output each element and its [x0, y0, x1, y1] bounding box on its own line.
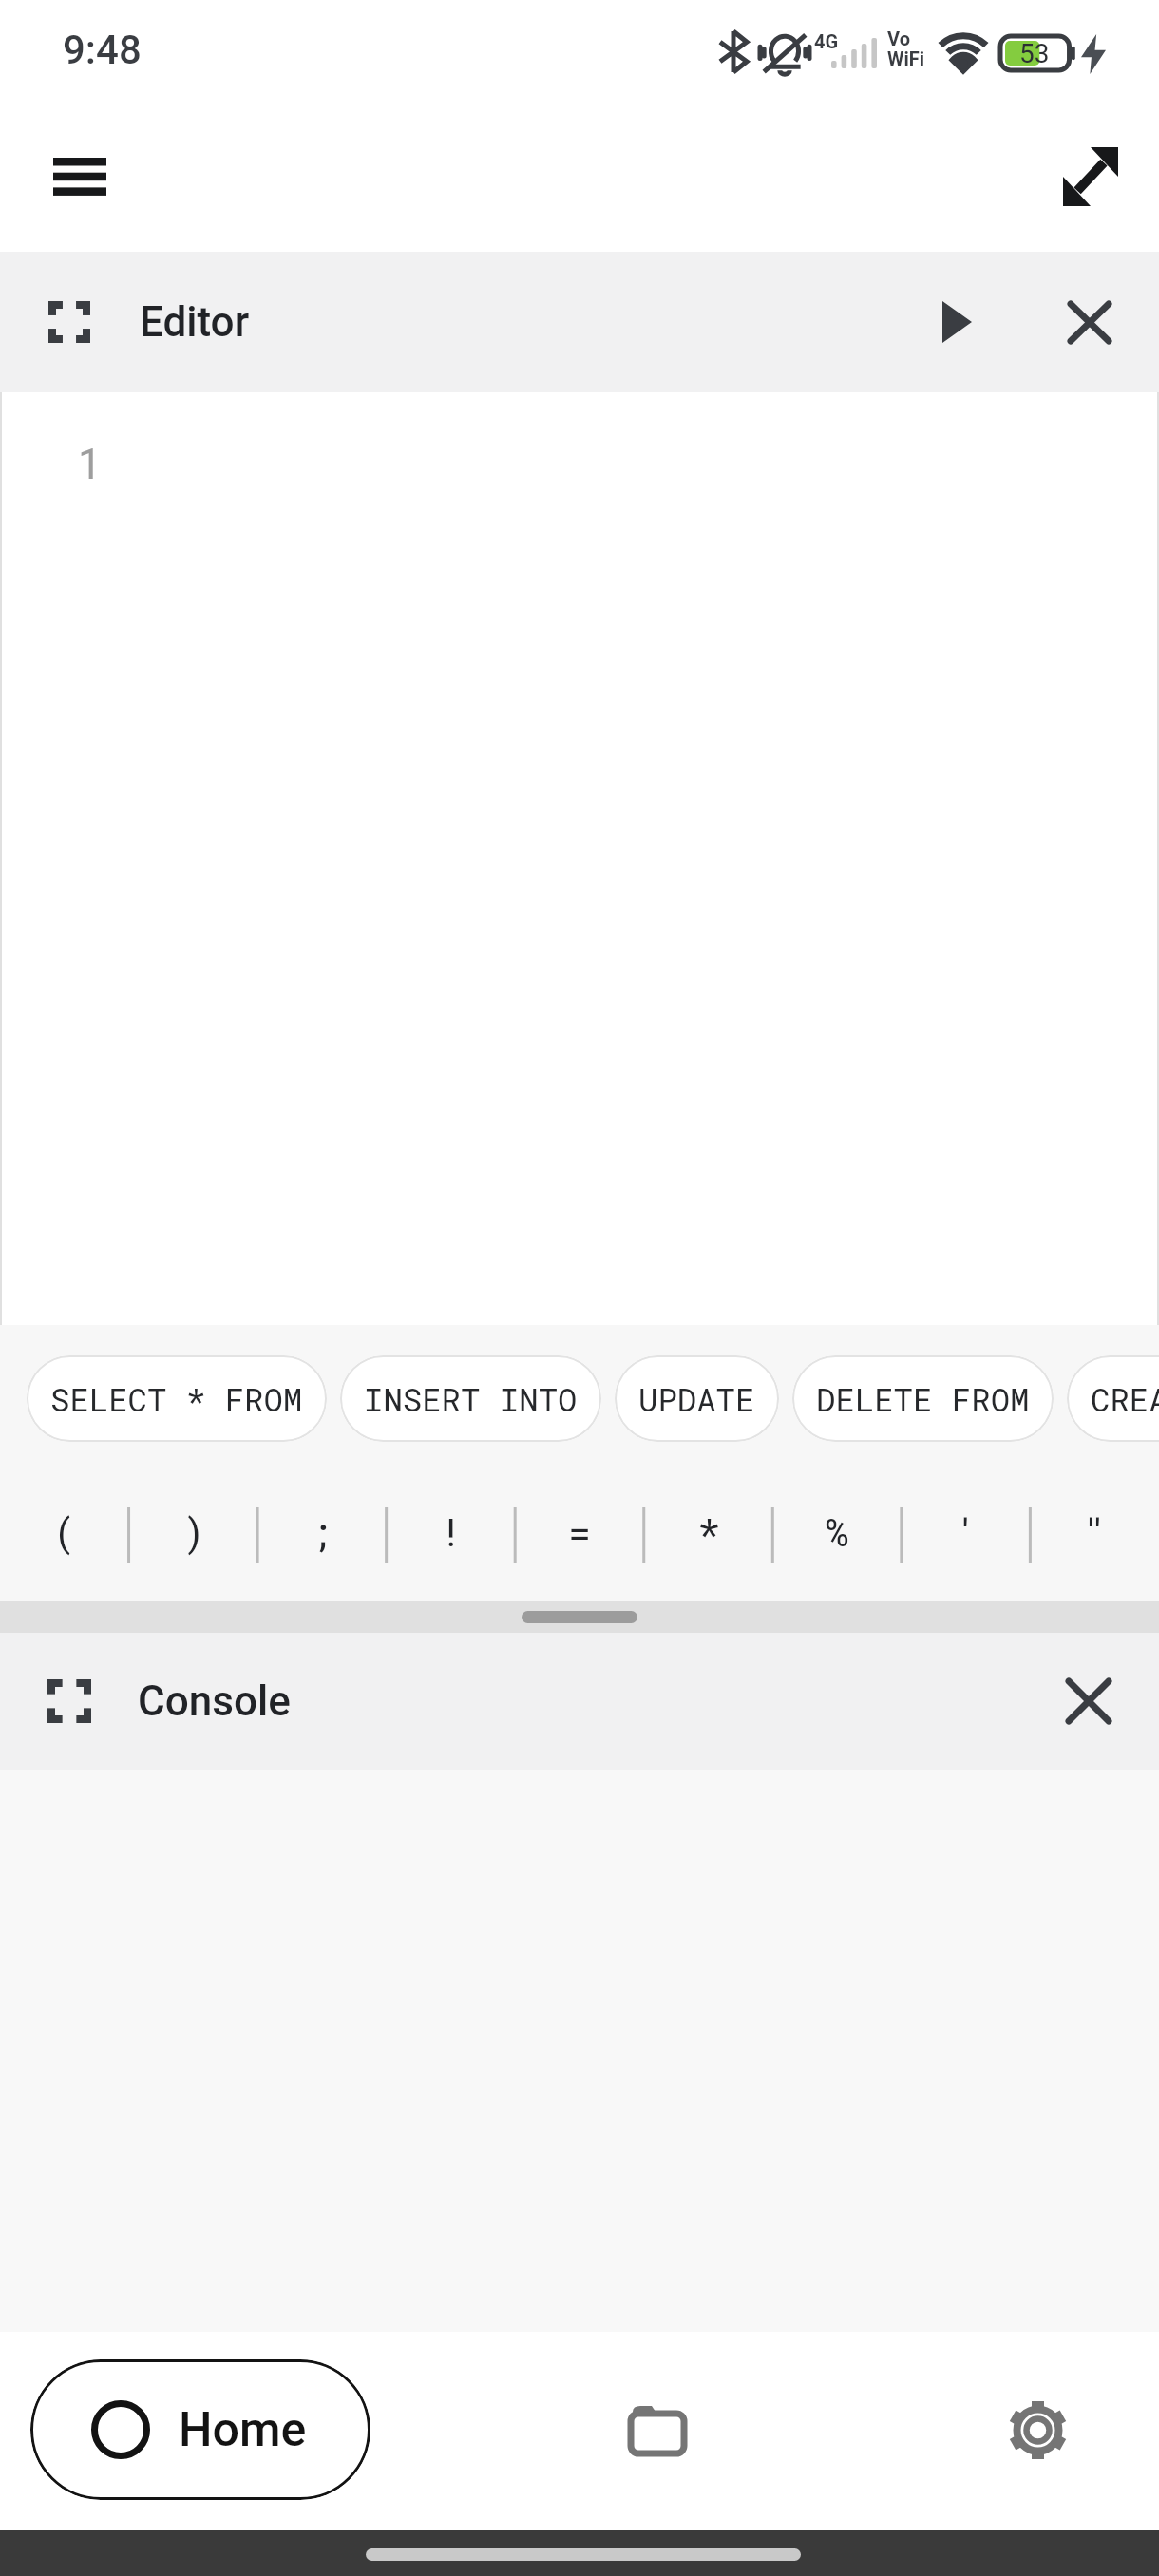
- button[interactable]: [926, 292, 987, 352]
- button[interactable]: !: [387, 1498, 516, 1564]
- staticText: Console: [138, 1676, 291, 1726]
- staticText: DELETE FROM: [816, 1377, 1030, 1420]
- staticText: =: [568, 1506, 592, 1557]
- staticText: Editor: [140, 297, 250, 347]
- button[interactable]: ): [129, 1498, 258, 1564]
- button[interactable]: [1058, 1671, 1119, 1732]
- staticText: ": [1083, 1506, 1107, 1557]
- button[interactable]: CREATE TABLE: [1067, 1355, 1159, 1442]
- staticText: (: [53, 1506, 77, 1557]
- staticText: 9:48: [63, 27, 142, 73]
- button[interactable]: Home: [30, 2359, 370, 2500]
- staticText: Vo: [887, 28, 910, 49]
- button[interactable]: =: [515, 1498, 644, 1564]
- staticText: 1: [78, 440, 102, 489]
- button[interactable]: DELETE FROM: [792, 1355, 1054, 1442]
- button[interactable]: SELECT * FROM: [27, 1355, 327, 1442]
- button[interactable]: [980, 2377, 1094, 2482]
- button[interactable]: *: [644, 1498, 773, 1564]
- staticText: !: [440, 1506, 464, 1557]
- button[interactable]: [1059, 292, 1120, 352]
- staticText: CREATE TABLE: [1091, 1377, 1159, 1420]
- staticText: ;: [311, 1506, 334, 1557]
- button[interactable]: [33, 286, 105, 358]
- button[interactable]: INSERT INTO: [340, 1355, 601, 1442]
- button[interactable]: UPDATE: [615, 1355, 779, 1442]
- button[interactable]: [1049, 135, 1132, 218]
- staticText: WiFi: [887, 47, 925, 69]
- button[interactable]: (: [0, 1498, 129, 1564]
- button[interactable]: [33, 1665, 105, 1737]
- staticText: SELECT * FROM: [50, 1377, 303, 1420]
- button[interactable]: ;: [257, 1498, 387, 1564]
- staticText: 4G: [814, 30, 839, 52]
- staticText: Home: [179, 2402, 307, 2458]
- button[interactable]: [38, 142, 122, 211]
- button[interactable]: ': [902, 1498, 1031, 1564]
- staticText: 53: [1019, 38, 1050, 69]
- button[interactable]: [600, 2377, 714, 2482]
- staticText: *: [697, 1506, 721, 1557]
- staticText: INSERT INTO: [364, 1377, 578, 1420]
- button[interactable]: ": [1030, 1498, 1159, 1564]
- staticText: %: [826, 1506, 849, 1557]
- staticText: ): [182, 1506, 206, 1557]
- button[interactable]: %: [772, 1498, 902, 1564]
- staticText: UPDATE: [638, 1377, 755, 1420]
- staticText: ': [955, 1506, 978, 1557]
